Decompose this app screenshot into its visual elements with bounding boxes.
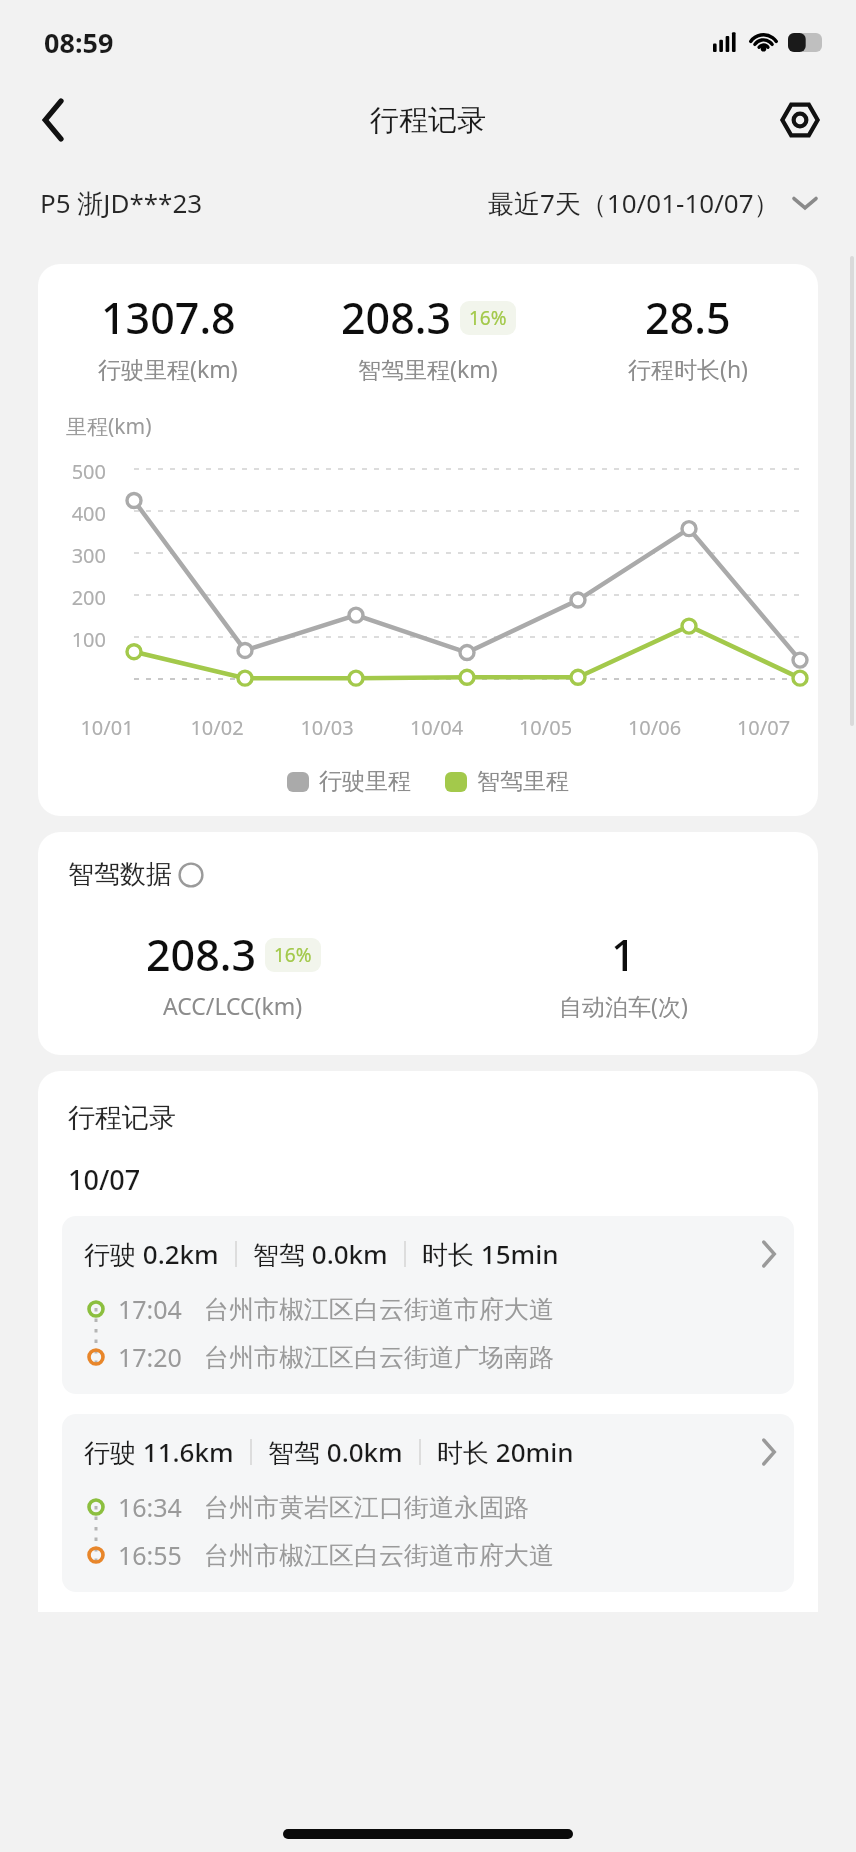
button[interactable]: 行驶里程 — [287, 767, 411, 796]
staticText: 智驾数据 — [68, 858, 172, 891]
staticText: 行程时长(h) — [628, 353, 749, 384]
staticText: 最近7天（10/01-10/07） — [488, 185, 780, 221]
staticText: 台州市椒江区白云街道市府大道 — [204, 1294, 554, 1325]
button[interactable]: 智驾数据 — [68, 858, 204, 891]
staticText: 1 — [611, 925, 636, 984]
staticText: 10/07 — [68, 1161, 141, 1198]
staticText: P5 浙JD***23 — [40, 185, 203, 221]
staticText: 17:04 — [118, 1292, 182, 1326]
staticText: 智驾 0.0km — [253, 1236, 388, 1272]
staticText: 行驶 0.2km — [84, 1236, 219, 1272]
staticText: 16:34 — [118, 1490, 182, 1524]
staticText: 16% — [469, 305, 507, 331]
staticText: 智驾里程 — [477, 767, 569, 796]
staticText: 400 — [38, 500, 106, 527]
staticText: 行程记录 — [68, 1101, 176, 1135]
staticText: 里程(km) — [66, 412, 152, 441]
staticText: 智驾 0.0km — [268, 1434, 403, 1470]
button[interactable]: Back — [22, 88, 86, 152]
button[interactable]: 行驶 0.2km — [62, 1216, 794, 1394]
staticText: 200 — [38, 584, 106, 611]
button[interactable]: 智驾里程 — [445, 767, 569, 796]
button[interactable]: Settings — [768, 88, 832, 152]
staticText: 10/07 — [709, 714, 818, 741]
staticText: 行驶里程(km) — [98, 353, 238, 384]
staticText: 28.5 — [645, 288, 731, 347]
staticText: 208.3 — [341, 288, 452, 347]
staticText: 智驾里程(km) — [358, 353, 498, 384]
staticText: 行程记录 — [370, 102, 486, 139]
staticText: 16% — [274, 942, 312, 968]
staticText: 自动泊车(次) — [559, 990, 688, 1021]
button[interactable]: 行驶 11.6km — [62, 1414, 794, 1592]
staticText: 时长 20min — [437, 1434, 574, 1470]
staticText: 500 — [38, 458, 106, 485]
staticText: ACC/LCC(km) — [163, 990, 303, 1021]
staticText: 16:55 — [118, 1538, 182, 1572]
staticText: 10/02 — [162, 714, 272, 741]
staticText: 行驶里程 — [319, 767, 411, 796]
staticText: 10/05 — [491, 714, 600, 741]
staticText: 台州市椒江区白云街道广场南路 — [204, 1342, 554, 1373]
staticText: 300 — [38, 542, 106, 569]
staticText: 1307.8 — [101, 288, 236, 347]
staticText: 208.3 — [146, 925, 257, 984]
staticText: 17:20 — [118, 1340, 182, 1374]
button[interactable]: 最近7天（10/01-10/07） — [488, 185, 816, 221]
staticText: 10/03 — [272, 714, 382, 741]
staticText: 10/01 — [52, 714, 162, 741]
staticText: 10/06 — [600, 714, 709, 741]
staticText: 10/04 — [382, 714, 491, 741]
staticText: 行驶 11.6km — [84, 1434, 234, 1470]
staticText: 时长 15min — [422, 1236, 559, 1272]
staticText: 台州市椒江区白云街道市府大道 — [204, 1540, 554, 1571]
staticText: 08:59 — [44, 24, 114, 61]
staticText: 100 — [38, 626, 106, 653]
staticText: 台州市黄岩区江口街道永固路 — [204, 1492, 529, 1523]
